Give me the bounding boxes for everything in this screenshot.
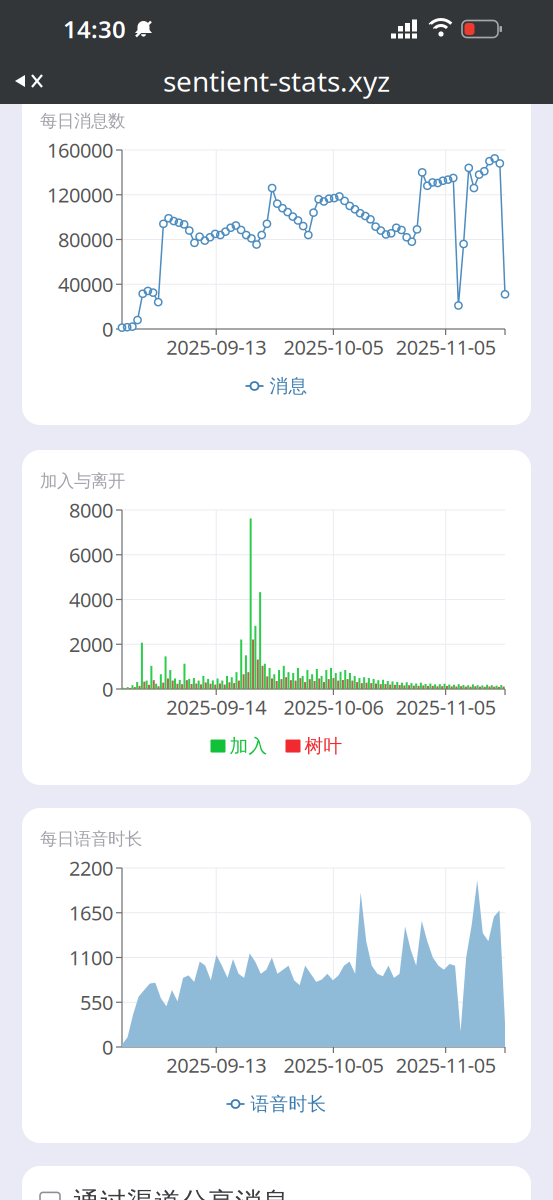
staticText: 4000 bbox=[69, 586, 113, 613]
staticText: 每日语音时长 bbox=[40, 828, 142, 850]
staticText: 0 bbox=[102, 316, 113, 342]
staticText: 树叶 bbox=[304, 734, 342, 757]
staticText: 40000 bbox=[58, 271, 113, 298]
staticText: 1650 bbox=[69, 899, 113, 926]
staticText: 160000 bbox=[47, 137, 113, 163]
staticText: 1100 bbox=[69, 944, 113, 971]
staticText: 8000 bbox=[69, 497, 113, 523]
staticText: 语音时长 bbox=[250, 1092, 326, 1115]
staticText: 6000 bbox=[69, 541, 113, 568]
staticText: 2200 bbox=[69, 855, 113, 881]
staticText: 2025-09-13 bbox=[166, 334, 266, 360]
staticText: 0 bbox=[102, 676, 113, 702]
staticText: 2025-10-05 bbox=[283, 334, 383, 360]
staticText: 14:30 bbox=[63, 13, 126, 45]
staticText: 550 bbox=[80, 989, 113, 1016]
staticText: 加入与离开 bbox=[40, 470, 125, 492]
staticText: 2025-09-14 bbox=[166, 694, 266, 720]
staticText: 消息 bbox=[269, 374, 307, 397]
staticText: 每日消息数 bbox=[40, 110, 125, 132]
button[interactable]: 通过渠道分享消息 bbox=[22, 1166, 531, 1200]
staticText: 2025-11-05 bbox=[396, 694, 496, 720]
button[interactable]: Back to app bbox=[0, 66, 57, 96]
staticText: sentient-stats.xyz bbox=[163, 62, 390, 100]
staticText: 加入 bbox=[229, 734, 267, 757]
staticText: 2025-10-05 bbox=[283, 1052, 383, 1078]
staticText: 2000 bbox=[69, 631, 113, 658]
staticText: 2025-10-06 bbox=[283, 694, 383, 720]
staticText: 120000 bbox=[47, 181, 113, 208]
staticText: 80000 bbox=[58, 226, 113, 253]
staticText: 2025-11-05 bbox=[396, 1052, 496, 1078]
staticText: 通过渠道分享消息 bbox=[73, 1186, 289, 1200]
staticText: 0 bbox=[102, 1034, 113, 1060]
staticText: 2025-11-05 bbox=[396, 334, 496, 360]
staticText: 2025-09-13 bbox=[166, 1052, 266, 1078]
